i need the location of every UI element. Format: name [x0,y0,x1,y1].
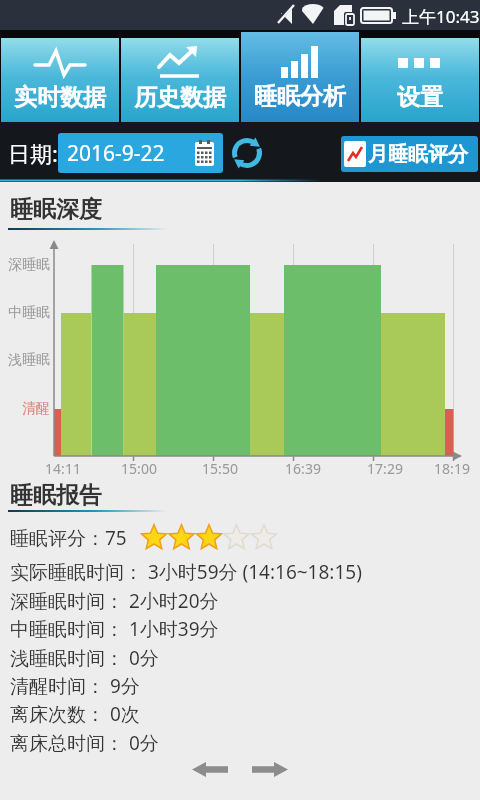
button[interactable]: 实时数据 [1,38,119,122]
staticText: 睡眠深度 [10,195,102,224]
staticText: 离床次数： 0次 [10,701,140,727]
staticText: 清醒 [0,400,50,418]
button[interactable]: 设置 [361,38,479,122]
button[interactable]: 2016-9-22 [58,133,223,173]
staticText: 中睡眠 [0,304,50,322]
staticText: 实际睡眠时间： 3小时59分 (14:16~18:15) [10,559,362,585]
staticText: 14:11 [43,459,83,478]
staticText: 中睡眠时间： 1小时39分 [10,616,219,642]
staticText: 历史数据 [134,83,226,112]
staticText: 睡眠分析 [254,82,346,111]
staticText: 睡眠评分：75 [10,525,127,551]
button[interactable]: 历史数据 [121,38,239,122]
staticText: 15:00 [119,459,159,478]
staticText: 设置 [397,83,443,112]
button[interactable] [185,755,235,783]
staticText: 浅睡眠时间： 0分 [10,645,159,671]
staticText: 离床总时间： 0分 [10,730,159,756]
staticText: 深睡眠 [0,256,50,274]
staticText: 2016-9-22 [67,139,165,167]
staticText: 实时数据 [14,83,106,112]
staticText: 清醒时间： 9分 [10,673,140,699]
staticText: 17:29 [365,459,405,478]
staticText: 18:19 [432,459,472,478]
button[interactable]: 月睡眠评分 [341,136,478,172]
staticText: 浅睡眠 [0,351,50,369]
staticText: 深睡眠时间： 2小时20分 [10,588,219,614]
button[interactable] [227,134,267,172]
staticText: 睡眠报告 [10,481,102,510]
button[interactable] [245,755,295,783]
staticText: 日期: [8,138,58,166]
button[interactable]: 睡眠分析 [241,32,359,122]
staticText: 15:50 [200,459,240,478]
staticText: 月睡眠评分 [368,142,468,167]
staticText: 16:39 [283,459,323,478]
staticText: 上午10:43 [402,5,480,28]
